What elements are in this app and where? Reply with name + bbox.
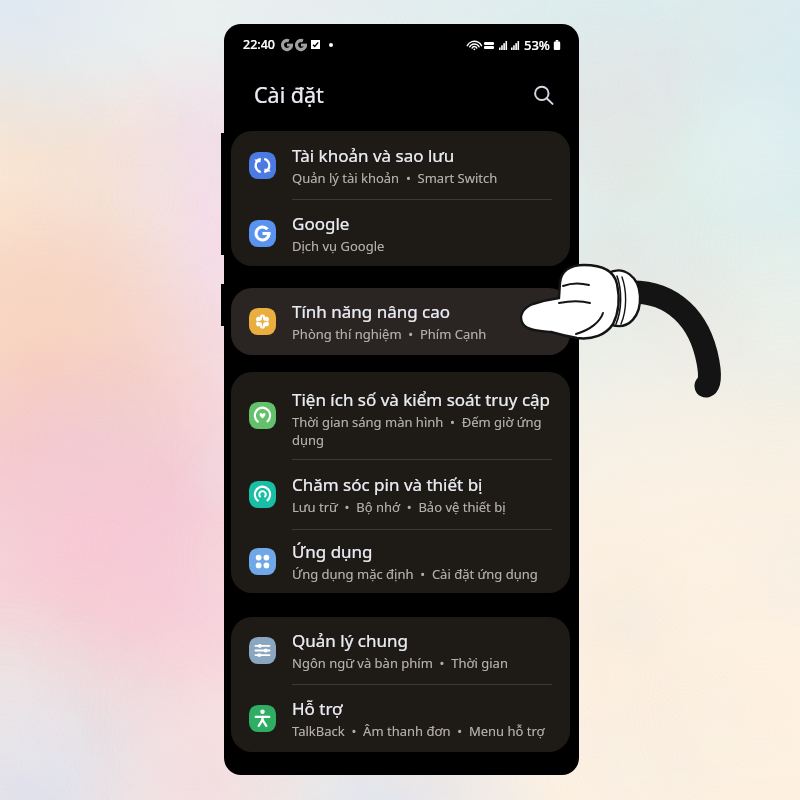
staticText: Dịch vụ Google xyxy=(292,237,385,255)
button[interactable]: Chăm sóc pin và thiết bị xyxy=(231,460,570,529)
staticText: Quản lý chung xyxy=(292,629,408,652)
staticText: Hỗ trợ xyxy=(292,697,343,720)
button[interactable]: Google xyxy=(231,200,570,266)
staticText: Ứng dụng mặc định • Cài đặt ứng dụng xyxy=(292,565,538,583)
staticText: Phòng thí nghiệm • Phím Cạnh xyxy=(292,325,487,343)
staticText: 53% xyxy=(524,36,550,54)
staticText: Lưu trữ • Bộ nhớ • Bảo vệ thiết bị xyxy=(292,498,506,516)
button[interactable]: Search xyxy=(525,77,561,113)
staticText: 22:40 xyxy=(243,36,276,53)
button[interactable]: Tiện ích số và kiểm soát truy cập xyxy=(231,372,570,459)
staticText: Thời gian sáng màn hình • Đếm giờ ứng dụ… xyxy=(292,413,542,449)
button[interactable]: Quản lý chung xyxy=(231,617,570,684)
staticText: TalkBack • Âm thanh đơn • Menu hỗ trợ xyxy=(292,722,545,740)
staticText: Chăm sóc pin và thiết bị xyxy=(292,473,483,496)
button[interactable]: Ứng dụng xyxy=(231,530,570,593)
button[interactable]: Tính năng nâng cao xyxy=(231,288,570,355)
staticText: Cài đặt xyxy=(254,80,324,109)
staticText: Tính năng nâng cao xyxy=(292,300,451,323)
staticText: Ngôn ngữ và bàn phím • Thời gian xyxy=(292,654,508,672)
staticText: Tài khoản và sao lưu xyxy=(292,144,455,167)
staticText: Ứng dụng xyxy=(292,540,373,563)
button[interactable]: Hỗ trợ xyxy=(231,685,570,752)
staticText: Quản lý tài khoản • Smart Switch xyxy=(292,169,498,187)
staticText: Google xyxy=(292,212,350,235)
button[interactable]: Tài khoản và sao lưu xyxy=(231,131,570,199)
staticText: Tiện ích số và kiểm soát truy cập xyxy=(292,388,551,411)
